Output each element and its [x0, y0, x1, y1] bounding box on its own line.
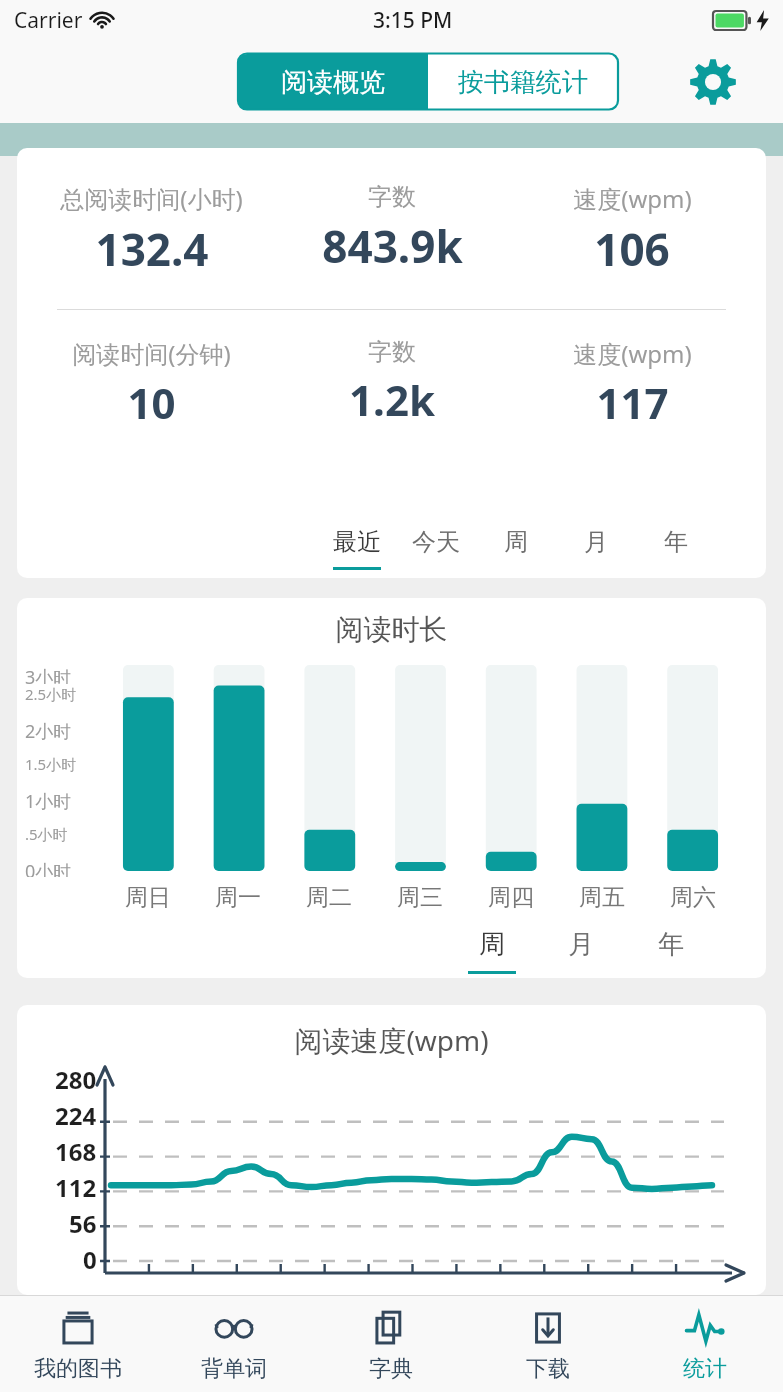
staticText: 周四 [488, 883, 534, 912]
staticText: 周 [504, 527, 528, 557]
staticText: 阅读速度(wpm) [17, 1021, 766, 1059]
staticText: 阅读时长 [17, 612, 766, 647]
staticText: 0 [83, 1243, 97, 1276]
staticText: 速度(wpm) [573, 182, 692, 215]
button[interactable]: 阅读概览 [238, 54, 428, 110]
staticText: 117 [596, 374, 669, 431]
button[interactable]: 月 [556, 527, 636, 570]
staticText: 周二 [306, 883, 352, 912]
staticText: 年 [664, 527, 688, 557]
staticText: 下载 [526, 1355, 570, 1383]
staticText: 阅读时间(分钟) [72, 337, 231, 370]
staticText: 今天 [412, 527, 460, 557]
staticText: 224 [55, 1099, 97, 1132]
staticText: 月 [584, 527, 608, 557]
button[interactable]: 最近 [317, 527, 396, 570]
staticText: 1.2k [349, 371, 435, 428]
staticText: 168 [55, 1135, 97, 1168]
staticText: 我的图书 [34, 1355, 122, 1383]
staticText: 最近 [333, 527, 381, 557]
button[interactable]: Settings [687, 56, 739, 108]
staticText: 统计 [683, 1355, 727, 1383]
staticText: 总阅读时间(小时) [60, 182, 243, 215]
staticText: 56 [69, 1207, 97, 1240]
staticText: 按书籍统计 [458, 66, 588, 99]
button[interactable]: 年 [636, 527, 716, 570]
staticText: 月 [568, 928, 594, 961]
button[interactable]: 下载 [469, 1296, 626, 1392]
staticText: 10 [127, 374, 176, 431]
button[interactable]: 按书籍统计 [428, 54, 618, 110]
button[interactable]: 我的图书 [0, 1296, 156, 1392]
staticText: 背单词 [201, 1355, 267, 1383]
staticText: Carrier [14, 6, 83, 35]
staticText: 1.5小时 [25, 754, 77, 774]
staticText: 周六 [670, 883, 716, 912]
staticText: 106 [594, 219, 670, 279]
staticText: 周一 [215, 883, 261, 912]
staticText: 280 [55, 1063, 97, 1096]
button[interactable]: 背单词 [156, 1296, 312, 1392]
staticText: 3小时 [25, 665, 72, 684]
button[interactable]: 周 [447, 928, 536, 974]
staticText: 1小时 [25, 789, 72, 814]
staticText: 字数 [368, 337, 416, 367]
staticText: 周五 [579, 883, 625, 912]
button[interactable]: 今天 [396, 527, 476, 570]
staticText: 阅读概览 [281, 66, 385, 99]
staticText: 速度(wpm) [573, 337, 692, 370]
staticText: 112 [55, 1171, 97, 1204]
staticText: 3:15 PM [373, 6, 453, 35]
staticText: 字数 [368, 182, 416, 212]
staticText: 字典 [369, 1355, 413, 1383]
staticText: 2小时 [25, 719, 72, 744]
staticText: 周日 [125, 883, 171, 912]
button[interactable]: 月 [536, 928, 626, 974]
staticText: 132.4 [95, 219, 209, 279]
button[interactable]: 年 [626, 928, 716, 974]
button[interactable]: 周 [476, 527, 556, 570]
staticText: 2.5小时 [25, 684, 77, 704]
staticText: 周 [479, 928, 505, 961]
button[interactable]: 统计 [626, 1296, 783, 1392]
button[interactable]: 字典 [312, 1296, 469, 1392]
staticText: .5小时 [25, 824, 68, 844]
staticText: 0小时 [25, 859, 72, 877]
staticText: 843.9k [322, 216, 463, 276]
staticText: 周三 [397, 883, 443, 912]
staticText: 年 [658, 928, 684, 961]
